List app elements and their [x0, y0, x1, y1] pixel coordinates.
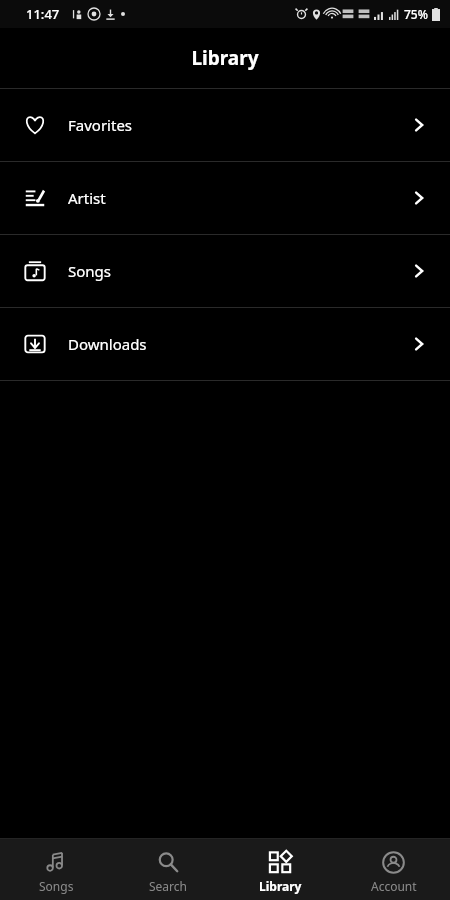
staticText: Search [149, 878, 187, 894]
button[interactable]: Songs [0, 845, 112, 894]
staticText: Library [259, 878, 302, 894]
button[interactable]: Artist [0, 162, 450, 234]
button[interactable]: Library [224, 845, 337, 894]
staticText: Songs [39, 878, 74, 894]
staticText: Library [191, 45, 259, 71]
staticText: Artist [68, 188, 106, 208]
staticText: Songs [68, 261, 111, 281]
button[interactable]: Downloads [0, 308, 450, 380]
staticText: 11:47 [26, 5, 60, 23]
staticText: Favorites [68, 115, 133, 135]
button[interactable]: Songs [0, 235, 450, 307]
button[interactable]: Account [337, 845, 450, 894]
button[interactable]: Favorites [0, 89, 450, 161]
staticText: 75% [404, 6, 428, 22]
staticText: Downloads [68, 334, 147, 354]
staticText: Account [371, 878, 417, 894]
button[interactable]: Search [112, 845, 224, 894]
